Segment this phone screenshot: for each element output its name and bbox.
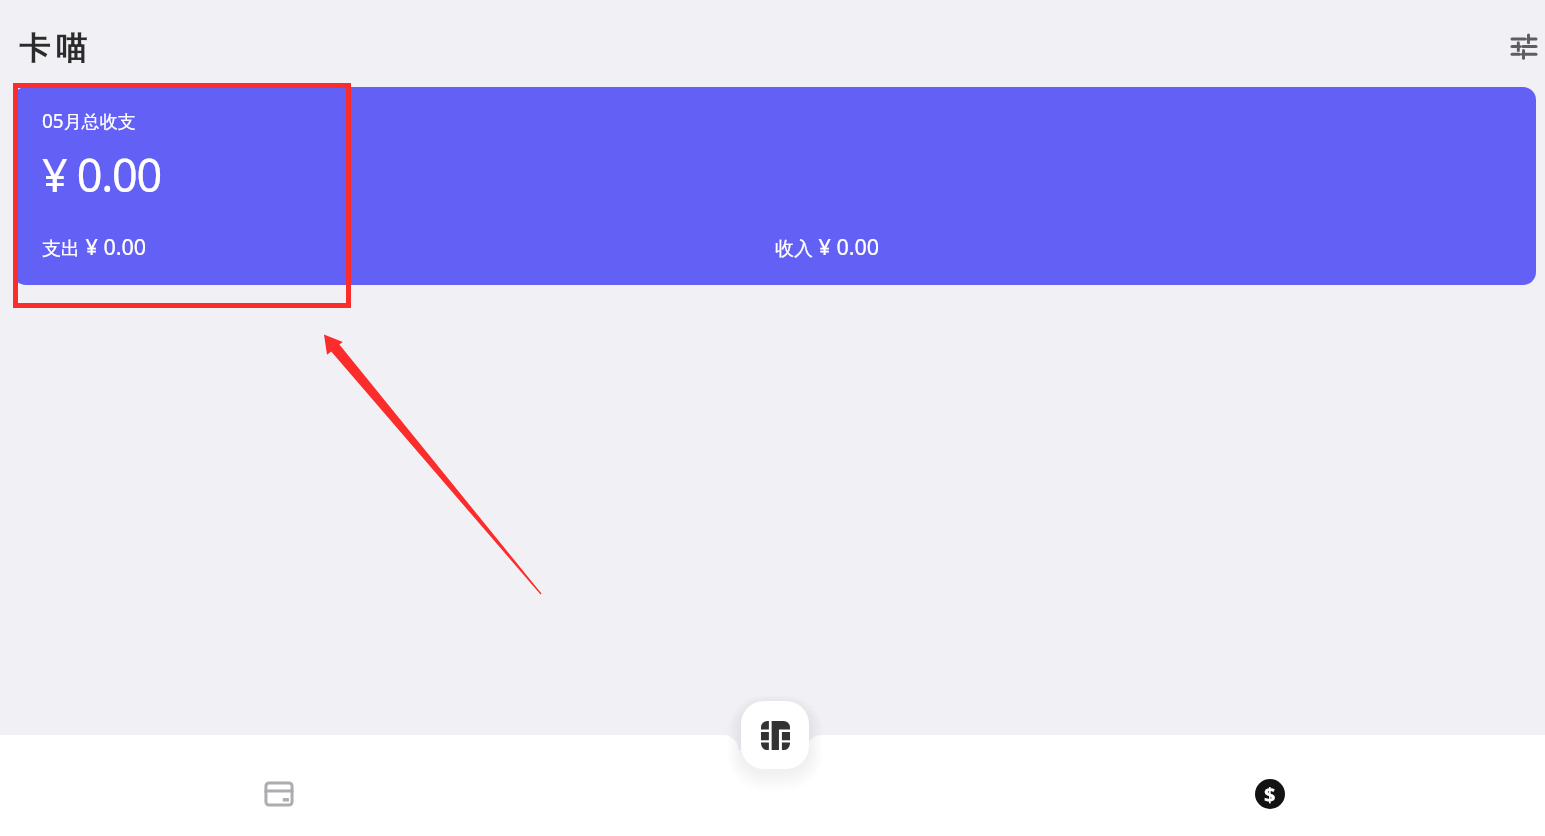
button[interactable]: Add record: [741, 701, 809, 769]
button[interactable]: Bills: [255, 770, 303, 818]
staticText: 支出 ¥ 0.00: [42, 232, 147, 261]
staticText: 05月总收支: [42, 108, 136, 134]
staticText: ¥ 0.00: [42, 144, 161, 205]
button[interactable]: Filter: [1502, 25, 1545, 69]
staticText: 卡喵: [16, 29, 90, 68]
button[interactable]: 05月总收支: [13, 87, 1536, 285]
staticText: 收入 ¥ 0.00: [775, 232, 880, 261]
staticText: $: [1264, 781, 1276, 808]
button[interactable]: Budget: [1246, 770, 1294, 818]
